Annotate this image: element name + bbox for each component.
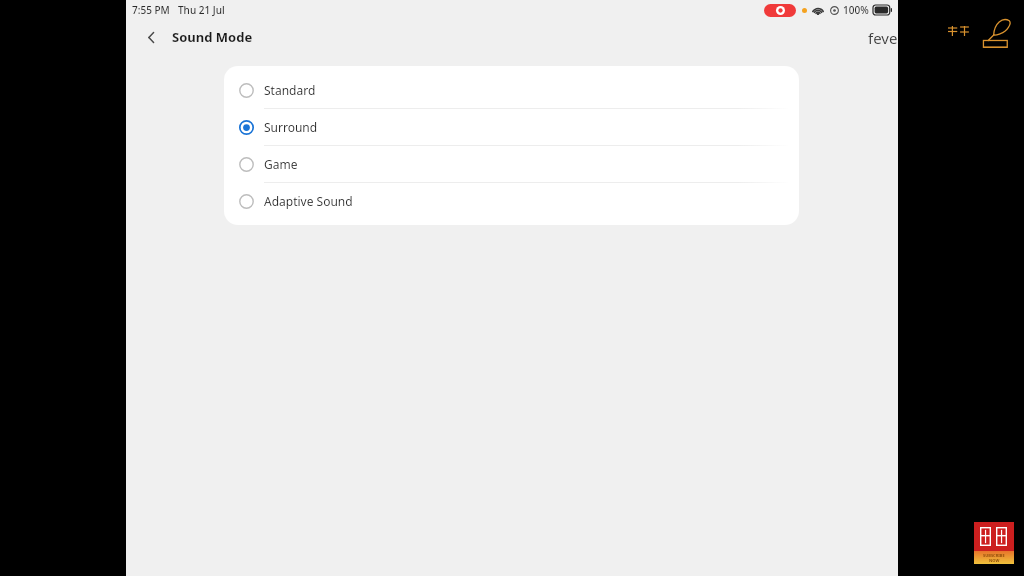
staticText: feve bbox=[868, 28, 898, 48]
staticText: Standard bbox=[264, 82, 316, 98]
staticText: NOW bbox=[989, 558, 1000, 563]
staticText: SUBSCRIBE bbox=[983, 553, 1005, 558]
staticText: Thu 21 Jul bbox=[178, 3, 225, 17]
staticText: Surround bbox=[264, 119, 318, 135]
button[interactable]: Surround bbox=[224, 109, 799, 146]
button[interactable]: Back bbox=[136, 22, 166, 52]
staticText: Sound Mode bbox=[172, 28, 253, 46]
staticText: Adaptive Sound bbox=[264, 193, 353, 209]
button[interactable]: Standard bbox=[224, 72, 799, 109]
staticText: 100% bbox=[843, 3, 869, 17]
staticText: Game bbox=[264, 156, 298, 172]
button[interactable]: Adaptive Sound bbox=[224, 183, 799, 219]
staticText: 7:55 PM bbox=[132, 3, 170, 17]
button[interactable]: Game bbox=[224, 146, 799, 183]
